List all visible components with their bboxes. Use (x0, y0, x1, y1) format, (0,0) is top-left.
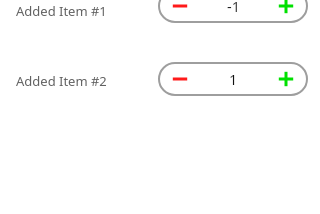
other: Increase (274, 0, 298, 18)
staticText: 1 (229, 69, 238, 89)
staticText: -1 (227, 0, 240, 16)
button[interactable]: Increase (264, 62, 308, 96)
staticText: Added Item #2 (16, 72, 107, 90)
staticText: Added Item #1 (16, 2, 107, 20)
button[interactable]: Added Item #1 (16, 2, 107, 20)
button[interactable]: Decrease (158, 0, 202, 23)
button[interactable]: Added Item #2 (16, 72, 107, 90)
other: Increase (274, 67, 298, 91)
other: Decrease (168, 67, 192, 91)
other: Decrease (168, 0, 192, 18)
button[interactable]: Decrease (158, 62, 202, 96)
button[interactable]: Increase (264, 0, 308, 23)
